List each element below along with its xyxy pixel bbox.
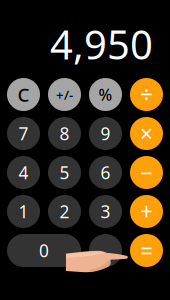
button[interactable]: ×	[130, 117, 163, 150]
staticText: 8	[59, 122, 69, 145]
button[interactable]: .	[89, 234, 122, 267]
button[interactable]: 7	[7, 117, 40, 150]
staticText: ÷	[140, 79, 153, 109]
staticText: ×	[140, 118, 153, 148]
staticText: =	[140, 235, 153, 265]
staticText: 1	[18, 200, 28, 223]
button[interactable]: 1	[7, 195, 40, 228]
staticText: 4,950	[50, 17, 153, 70]
staticText: 3	[100, 200, 110, 223]
staticText: 4	[18, 161, 28, 184]
staticText: 0	[39, 239, 49, 262]
button[interactable]: 0	[7, 234, 81, 267]
staticText: 9	[100, 122, 110, 145]
button[interactable]: 9	[89, 117, 122, 150]
button[interactable]: 6	[89, 156, 122, 189]
staticText: −	[140, 157, 153, 187]
button[interactable]: 8	[48, 117, 81, 150]
button[interactable]: 5	[48, 156, 81, 189]
staticText: 5	[59, 161, 69, 184]
button[interactable]: +	[130, 195, 163, 228]
staticText: 6	[100, 161, 110, 184]
staticText: +	[140, 196, 153, 226]
button[interactable]: 2	[48, 195, 81, 228]
staticText: C	[17, 82, 29, 107]
button[interactable]: =	[130, 234, 163, 267]
staticText: 7	[18, 122, 28, 145]
button[interactable]: 4	[7, 156, 40, 189]
staticText: %	[98, 84, 112, 105]
button[interactable]: 3	[89, 195, 122, 228]
button[interactable]: −	[130, 156, 163, 189]
button[interactable]: C	[7, 78, 40, 111]
staticText: 2	[59, 200, 69, 223]
button[interactable]: +/-	[48, 78, 81, 111]
button[interactable]: %	[89, 78, 122, 111]
staticText: .	[103, 239, 108, 262]
staticText: +/-	[56, 86, 73, 103]
button[interactable]: ÷	[130, 78, 163, 111]
